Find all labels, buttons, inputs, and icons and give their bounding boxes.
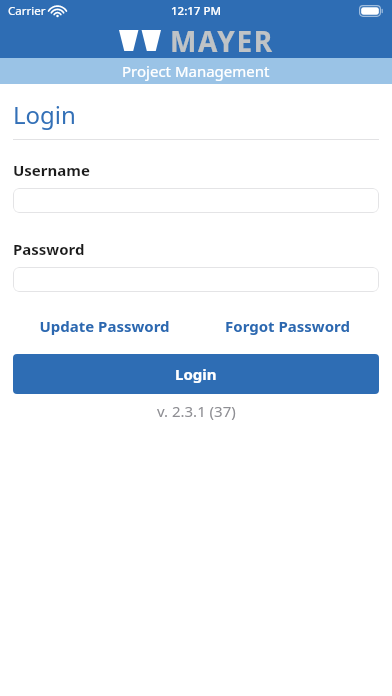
staticText: Login <box>13 98 76 131</box>
staticText: Password <box>13 239 85 259</box>
button[interactable] <box>13 267 379 292</box>
staticText: v. 2.3.1 (37) <box>157 401 236 421</box>
staticText: Login <box>175 364 217 384</box>
staticText: Project Management <box>122 61 270 81</box>
staticText: Forgot Password <box>225 316 350 336</box>
button[interactable] <box>13 188 379 213</box>
button[interactable]: Login <box>13 354 379 394</box>
staticText: Carrier <box>8 3 46 19</box>
staticText: MAYER <box>170 22 274 58</box>
button[interactable]: Forgot Password <box>196 316 379 336</box>
button[interactable]: Update Password <box>13 316 196 336</box>
staticText: Update Password <box>39 316 170 336</box>
staticText: 12:17 PM <box>171 3 222 19</box>
staticText: Username <box>13 160 90 180</box>
